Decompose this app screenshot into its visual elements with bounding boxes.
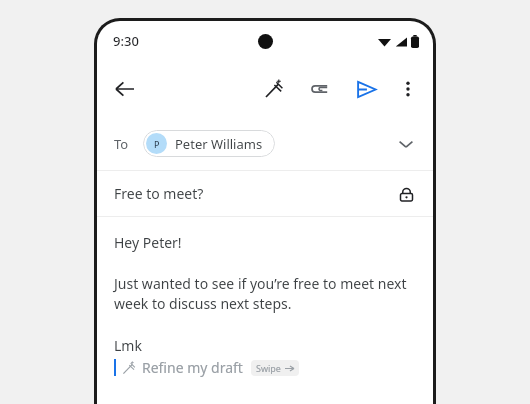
staticText: To — [114, 135, 129, 153]
staticText: 9:30 — [113, 32, 139, 50]
staticText: Refine my draft — [142, 358, 243, 377]
button[interactable]: Send — [349, 72, 383, 106]
button[interactable]: Confidential mode — [390, 178, 422, 210]
button[interactable]: Back — [107, 71, 143, 107]
button[interactable]: Refine my draft — [114, 358, 299, 377]
button[interactable]: More options — [391, 72, 425, 106]
staticText: Just wanted to see if you’re free to mee… — [114, 274, 417, 314]
staticText: Lmk — [114, 336, 142, 355]
button[interactable]: Show more recipients — [389, 127, 423, 161]
staticText: Hey Peter! — [114, 233, 182, 252]
button[interactable]: To — [97, 117, 433, 170]
staticText: P — [154, 138, 160, 150]
button[interactable]: Hey Peter! — [114, 217, 417, 377]
button[interactable]: Attach file — [303, 72, 337, 106]
button[interactable]: Refine with AI — [257, 72, 291, 106]
staticText: Free to meet? — [114, 184, 204, 203]
button[interactable]: Free to meet? — [97, 171, 433, 216]
staticText: Peter Williams — [175, 135, 263, 153]
staticText: Swipe — [256, 362, 281, 374]
button[interactable]: P — [143, 130, 275, 157]
